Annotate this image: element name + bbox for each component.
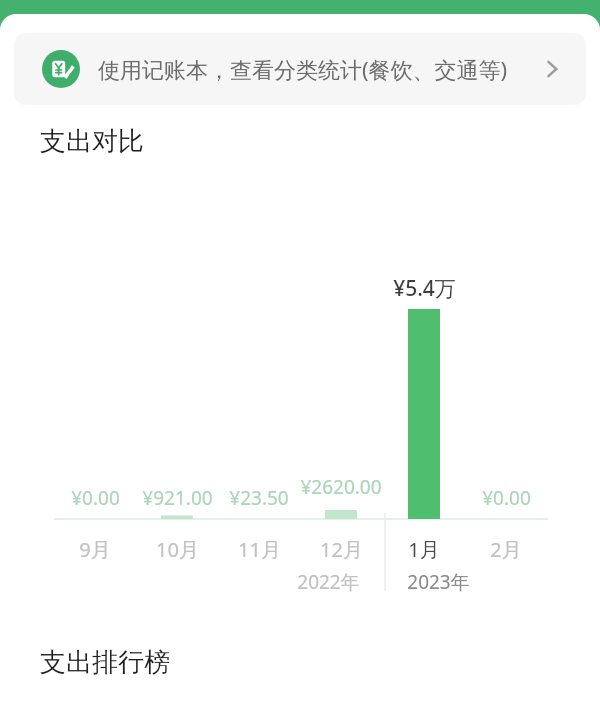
staticText: ¥23.50 [229,485,289,511]
staticText: 2022年 [297,569,360,595]
staticText: ¥2620.00 [300,474,382,500]
staticText: 2023年 [407,569,470,595]
staticText: 2月 [490,536,522,563]
staticText: ¥0.00 [482,485,531,511]
staticText: 10月 [156,536,199,563]
staticText: ¥5.4万 [393,274,456,303]
staticText: ¥921.00 [142,485,213,511]
staticText: 使用记账本，查看分类统计(餐饮、交通等) [98,54,528,84]
staticText: 1月 [408,536,440,563]
button[interactable]: 使用记账本，查看分类统计(餐饮、交通等) [14,33,586,105]
staticText: 9月 [79,536,111,563]
staticText: 11月 [238,536,281,563]
staticText: 支出排行榜 [40,646,170,679]
staticText: ¥0.00 [71,485,120,511]
other: 查看分类统计 [536,53,568,85]
staticText: 12月 [320,536,363,563]
staticText: 支出对比 [40,125,144,158]
